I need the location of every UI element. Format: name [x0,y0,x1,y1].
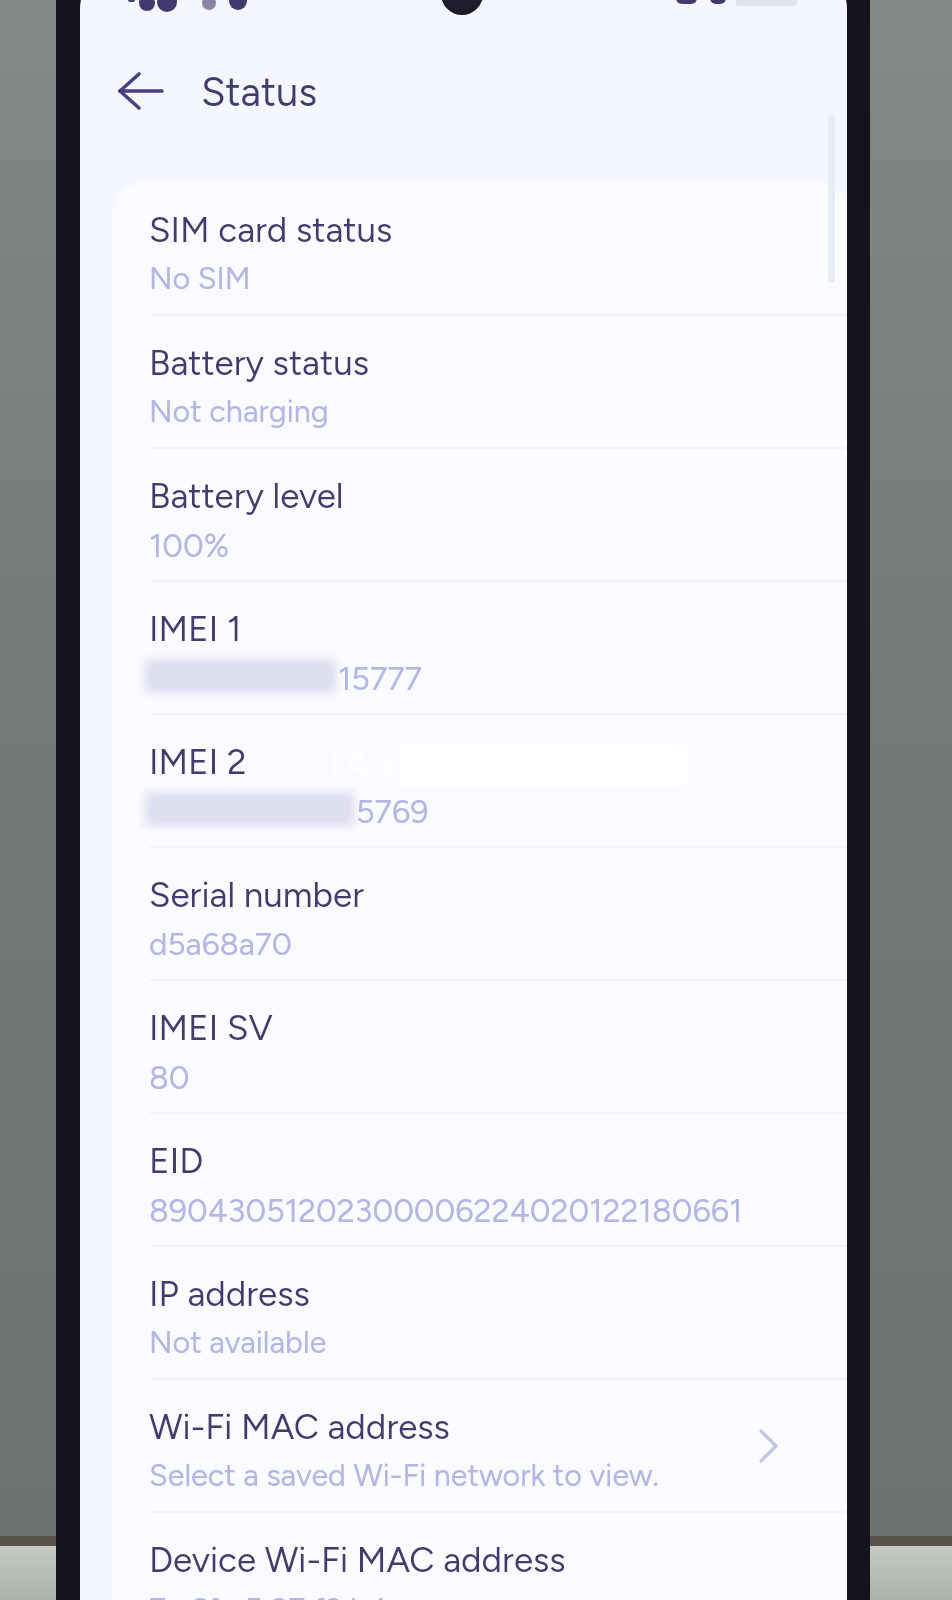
staticText: Battery status [149,342,369,384]
button[interactable] [112,838,847,971]
staticText: EID [149,1140,204,1182]
staticText: 5769 [356,792,429,831]
button[interactable] [112,1104,847,1237]
button[interactable] [112,1503,847,1600]
staticText: 80 [149,1058,190,1097]
staticText: SIM card status [149,209,393,251]
staticText: Not charging [149,393,329,430]
staticText: IMEI SV [149,1007,273,1049]
staticText: 15777 [338,659,422,698]
staticText: 7a:6f:e5:27:f3:b4 [149,1590,388,1600]
button[interactable] [112,705,847,838]
button[interactable] [112,1237,847,1370]
staticText: IMEI 2 [149,741,247,783]
button[interactable] [112,173,847,306]
staticText: No SIM [149,260,251,297]
button[interactable] [112,1370,847,1503]
staticText: d5a68a70 [149,925,292,963]
staticText: Select a saved Wi-Fi network to view. [149,1457,659,1494]
staticText: Status [201,68,318,116]
staticText: Device Wi-Fi MAC address [149,1539,566,1581]
button[interactable] [112,971,847,1104]
staticText: Serial number [149,874,365,916]
button[interactable]: Back [104,55,176,127]
staticText: 89043051202300006224020122180661 [149,1191,743,1230]
button[interactable] [112,306,847,439]
button[interactable] [112,572,847,705]
staticText: Wi-Fi MAC address [149,1406,450,1448]
staticText: Battery level [149,475,344,517]
button[interactable] [112,439,847,572]
staticText: Not available [149,1324,327,1361]
staticText: IMEI 1 [149,608,242,650]
staticText: 100% [149,526,230,565]
staticText: IP address [149,1273,310,1315]
